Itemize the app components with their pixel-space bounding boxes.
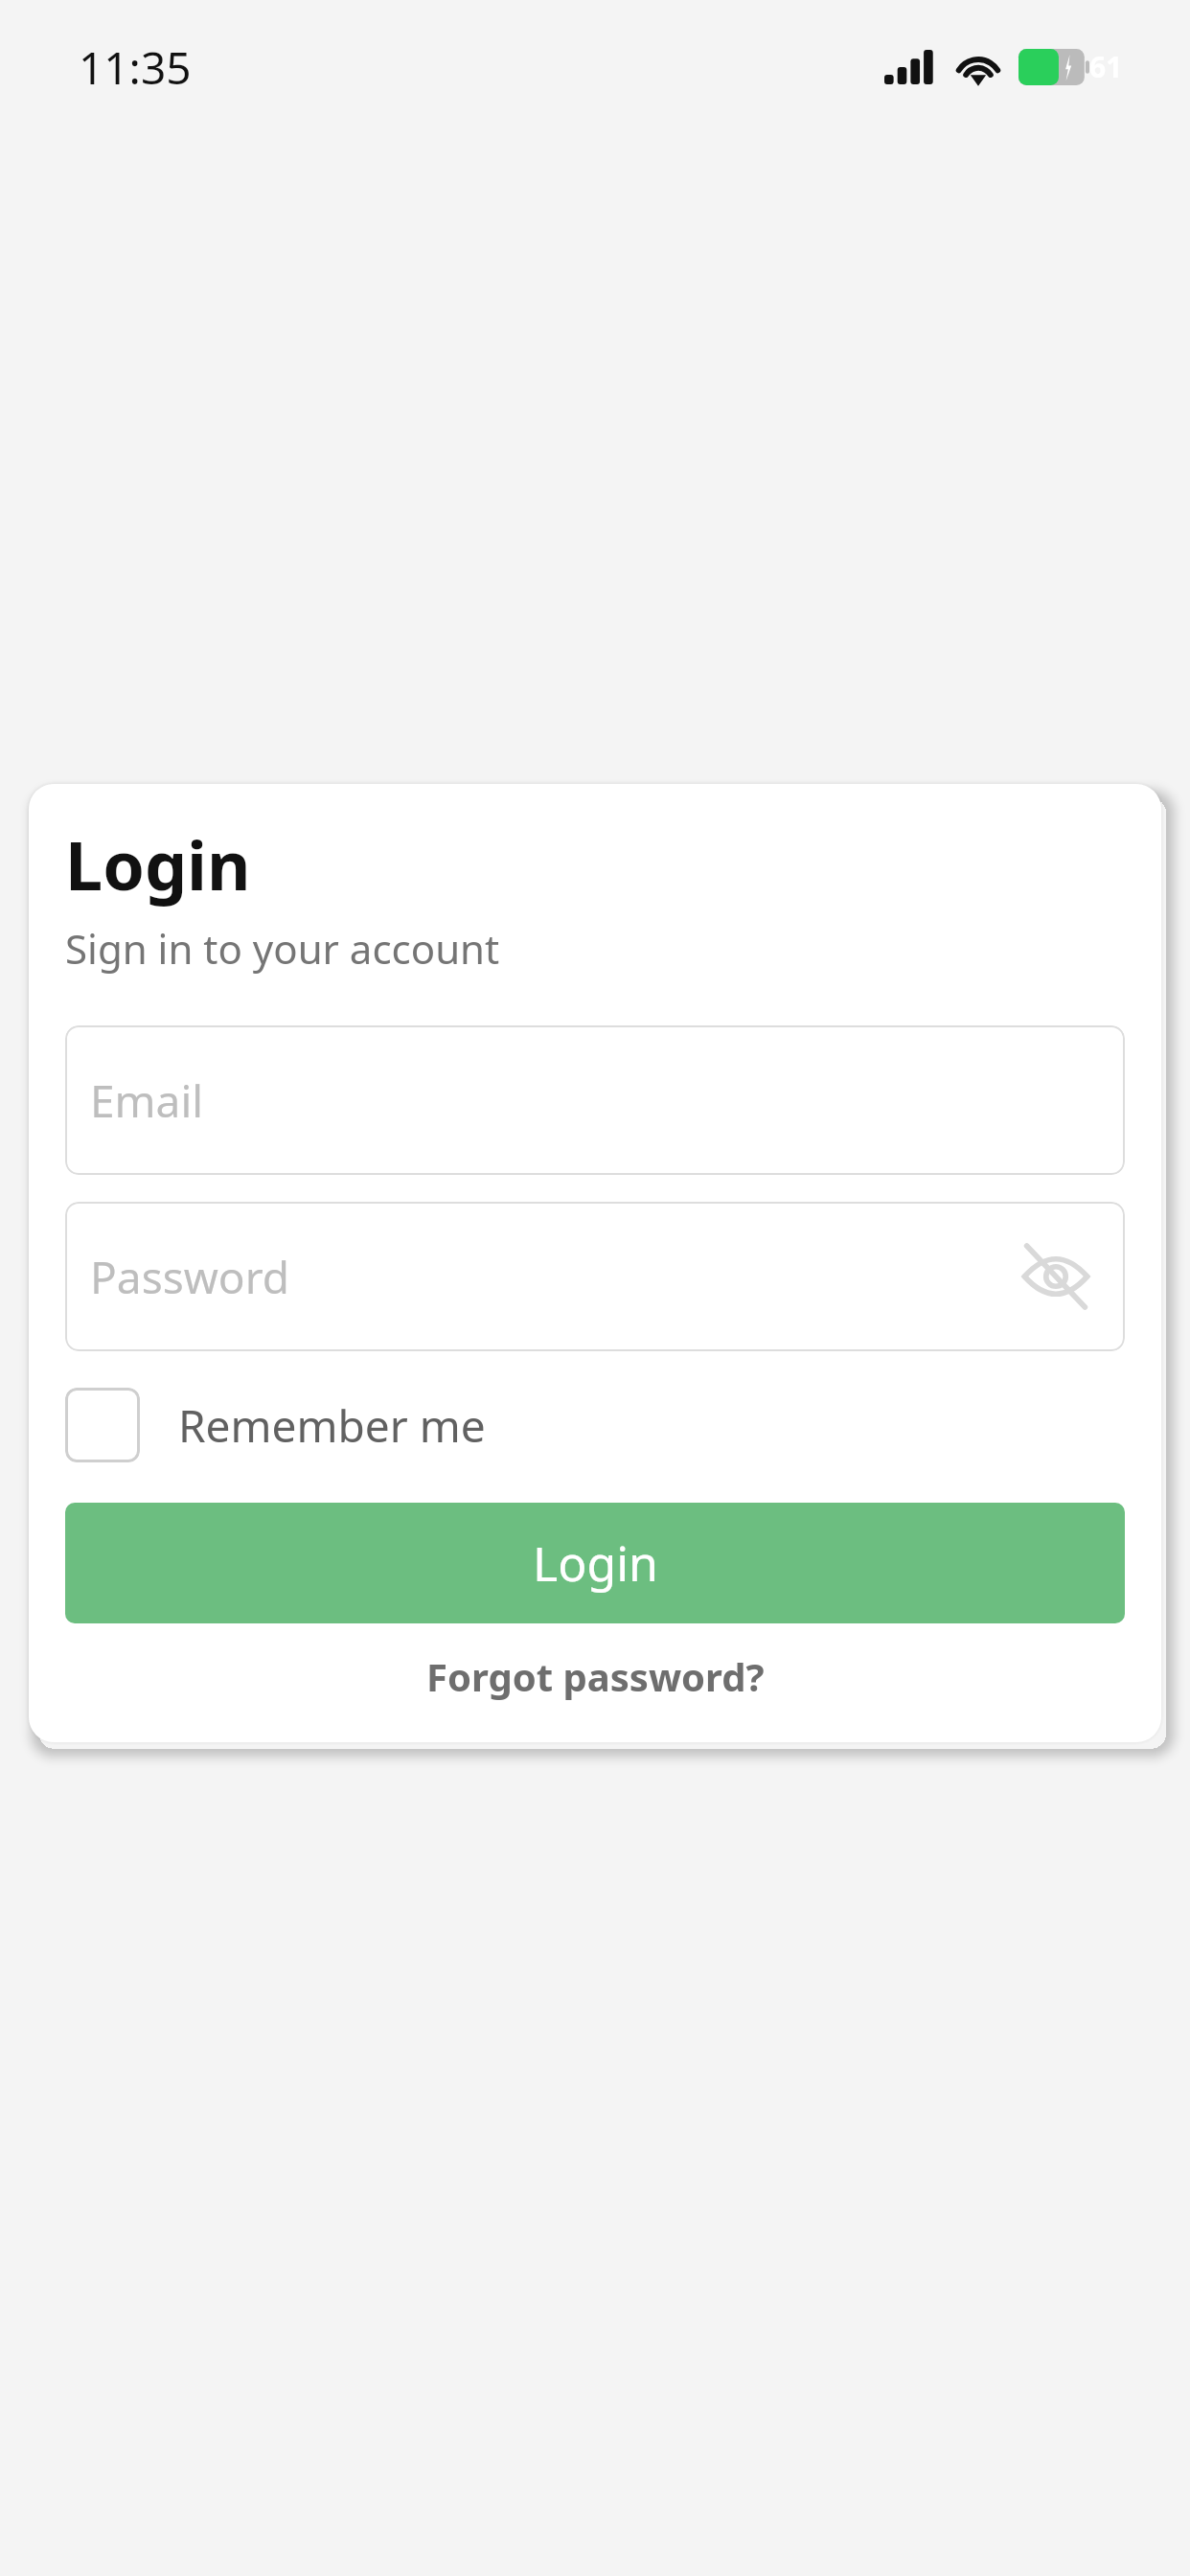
button[interactable]: Show password bbox=[1012, 1232, 1100, 1321]
staticText: Email bbox=[90, 1070, 204, 1131]
button[interactable]: Email bbox=[65, 1025, 1125, 1175]
staticText: Login bbox=[65, 818, 251, 909]
staticText: 11:35 bbox=[79, 37, 192, 98]
button[interactable]: Password bbox=[65, 1202, 1125, 1351]
staticText: Password bbox=[90, 1247, 290, 1307]
staticText: Login bbox=[533, 1530, 658, 1596]
staticText: Forgot password? bbox=[426, 1650, 765, 1702]
staticText: Sign in to your account bbox=[65, 921, 500, 976]
staticText: Remember me bbox=[178, 1395, 486, 1456]
staticText: 61 bbox=[1089, 47, 1123, 86]
button[interactable]: Remember me bbox=[65, 1388, 1125, 1462]
button[interactable]: Forgot password? bbox=[65, 1643, 1125, 1710]
button[interactable]: Login bbox=[65, 1503, 1125, 1623]
